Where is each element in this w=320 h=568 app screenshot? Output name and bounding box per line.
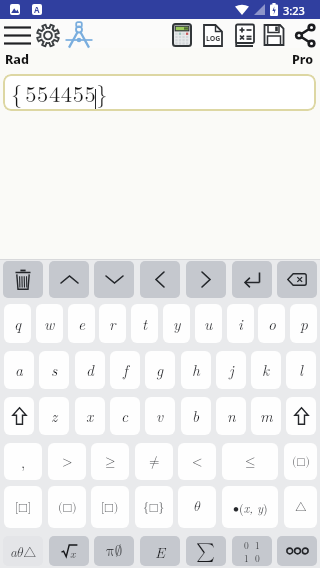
button[interactable]: q xyxy=(4,304,31,343)
staticText: n xyxy=(227,405,236,427)
button[interactable]: (□) xyxy=(48,486,86,528)
button[interactable] xyxy=(94,261,134,298)
button[interactable]: o xyxy=(258,304,285,343)
button[interactable]: s xyxy=(39,351,69,389)
button[interactable]: b xyxy=(181,397,211,435)
button[interactable]: x xyxy=(75,397,105,435)
staticText: ≠ xyxy=(149,455,160,468)
staticText: u xyxy=(204,313,213,335)
button[interactable]: l xyxy=(286,351,316,389)
button[interactable]: x xyxy=(49,536,89,566)
button[interactable] xyxy=(170,23,194,47)
staticText: A xyxy=(34,4,40,15)
staticText: Rad xyxy=(5,51,29,68)
button[interactable] xyxy=(232,261,272,298)
button[interactable] xyxy=(277,261,317,298)
button[interactable]: i xyxy=(227,304,254,343)
button[interactable]: p xyxy=(290,304,317,343)
button[interactable] xyxy=(49,261,89,298)
staticText: 1 0 xyxy=(244,551,260,564)
staticText: E xyxy=(155,541,166,562)
staticText: l xyxy=(299,359,303,381)
staticText: v xyxy=(156,405,164,427)
button[interactable]: h xyxy=(181,351,211,389)
staticText: c xyxy=(121,405,129,427)
button[interactable]: m xyxy=(251,397,281,435)
staticText: z xyxy=(51,405,58,427)
button[interactable]: n xyxy=(216,397,246,435)
staticText: j xyxy=(229,359,234,381)
button[interactable] xyxy=(34,19,62,48)
button[interactable] xyxy=(277,536,317,566)
staticText: a xyxy=(15,359,23,381)
staticText: d xyxy=(86,359,94,381)
button[interactable] xyxy=(262,23,286,47)
button[interactable]: g xyxy=(145,351,175,389)
button[interactable]: e xyxy=(68,304,95,343)
button[interactable]: (□) xyxy=(284,443,317,480)
button[interactable]: < xyxy=(178,443,216,480)
button[interactable]: w xyxy=(36,304,63,343)
staticText: 3:23 xyxy=(283,3,305,18)
button[interactable]: 𝜃 xyxy=(178,486,216,528)
staticText: w xyxy=(44,313,55,335)
button[interactable]: d xyxy=(75,351,105,389)
button[interactable]: c xyxy=(110,397,140,435)
button[interactable]: j xyxy=(216,351,246,389)
button[interactable] xyxy=(286,397,316,435)
button[interactable] xyxy=(140,261,180,298)
staticText: p xyxy=(300,313,308,335)
staticText: k xyxy=(262,359,270,381)
staticText: Pro xyxy=(292,51,314,68)
staticText: , xyxy=(21,451,26,472)
staticText: LOG xyxy=(206,34,221,44)
button[interactable]: v xyxy=(145,397,175,435)
button[interactable]: f xyxy=(110,351,140,389)
staticText: g xyxy=(156,359,164,381)
button[interactable]: a𝜃△ xyxy=(3,536,43,566)
button[interactable] xyxy=(292,23,318,47)
button[interactable]: > xyxy=(48,443,86,480)
button[interactable]: ≥ xyxy=(91,443,129,480)
button[interactable]: u xyxy=(195,304,222,343)
button[interactable]: ∑ xyxy=(186,536,226,566)
staticText: > xyxy=(62,455,73,468)
button[interactable]: π∅ xyxy=(94,536,134,566)
staticText: ≤ xyxy=(245,455,256,468)
staticText: y xyxy=(173,313,181,335)
button[interactable]: •(x, y) xyxy=(222,486,278,528)
button[interactable]: [□] xyxy=(4,486,42,528)
button[interactable]: t xyxy=(131,304,158,343)
button[interactable]: r xyxy=(99,304,126,343)
button[interactable]: , xyxy=(4,443,42,480)
staticText: π∅ xyxy=(106,544,123,559)
staticText: △ xyxy=(295,501,307,513)
staticText: q xyxy=(14,313,22,335)
staticText: a𝜃△ xyxy=(10,542,37,561)
staticText: t xyxy=(142,313,148,335)
button[interactable]: ≠ xyxy=(135,443,173,480)
button[interactable] xyxy=(4,397,34,435)
staticText: {□} xyxy=(143,501,165,513)
button[interactable] xyxy=(3,261,43,298)
button[interactable] xyxy=(0,19,34,48)
button[interactable]: a xyxy=(4,351,34,389)
staticText: (□) xyxy=(292,456,310,468)
button[interactable] xyxy=(233,23,257,47)
button[interactable]: y xyxy=(163,304,190,343)
button[interactable]: 0 1 xyxy=(232,536,272,566)
button[interactable]: [□) xyxy=(91,486,129,528)
button[interactable] xyxy=(64,19,94,48)
button[interactable] xyxy=(186,261,226,298)
staticText: x xyxy=(70,545,76,559)
button[interactable]: △ xyxy=(284,486,317,528)
button[interactable]: z xyxy=(39,397,69,435)
button[interactable]: {554455} xyxy=(3,74,316,111)
button[interactable]: ≤ xyxy=(222,443,278,480)
button[interactable]: k xyxy=(251,351,281,389)
button[interactable]: E xyxy=(140,536,180,566)
staticText: •(x, y) xyxy=(233,499,268,516)
button[interactable]: LOG xyxy=(201,23,225,47)
button[interactable]: {□} xyxy=(135,486,173,528)
staticText: s xyxy=(51,359,58,381)
